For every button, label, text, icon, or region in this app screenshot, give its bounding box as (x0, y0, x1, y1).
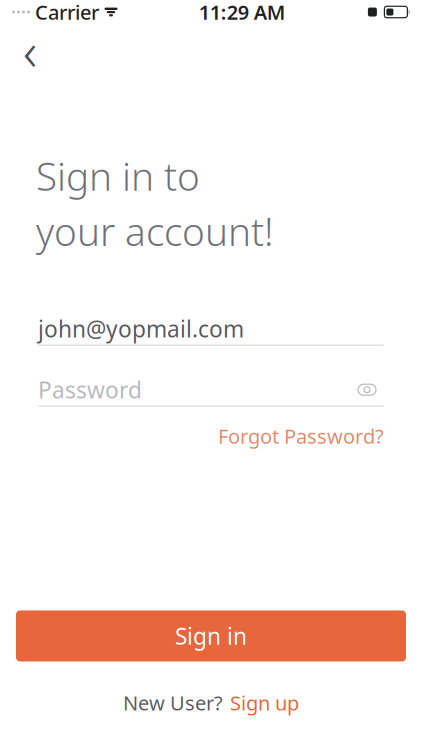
button[interactable]: Sign in (16, 610, 406, 661)
button[interactable]: Back (8, 28, 52, 72)
staticText: Password (38, 375, 142, 405)
button[interactable]: Forgot Password? (218, 417, 384, 455)
staticText: Carrier (35, 0, 99, 25)
staticText: ‹ (23, 15, 37, 85)
staticText: Forgot Password? (218, 423, 384, 449)
button[interactable]: Sign up (230, 685, 299, 720)
button[interactable]: Show password (350, 375, 384, 405)
staticText: john@yopmail.com (38, 314, 244, 344)
staticText: Sign in (175, 621, 247, 651)
staticText: your account! (36, 205, 274, 257)
staticText: Sign in to (36, 150, 200, 201)
staticText: New User? (123, 689, 223, 716)
staticText: 11:29 AM (199, 0, 286, 25)
staticText: Sign up (230, 689, 299, 716)
